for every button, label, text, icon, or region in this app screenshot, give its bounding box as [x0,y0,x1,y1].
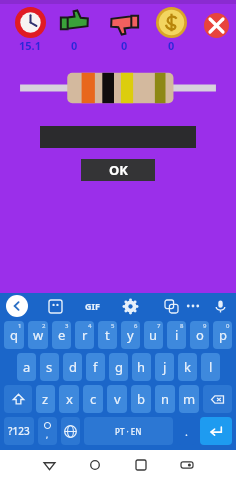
button[interactable]: g [109,353,128,381]
button[interactable]: Translate [160,295,182,317]
staticText: i [175,326,179,344]
button[interactable]: e [52,321,71,349]
staticText: u [149,326,158,344]
staticText: 0 [226,322,230,330]
button[interactable]: a [17,353,36,381]
staticText: n [161,390,170,408]
button[interactable]: o [190,321,209,349]
button[interactable]: . [177,417,196,445]
staticText: m [183,390,196,408]
staticText: e [58,326,66,344]
button[interactable]: s [40,353,59,381]
button[interactable]: More options [182,295,204,317]
staticText: OK [109,161,128,179]
staticText: s [46,358,53,376]
button[interactable]: t [98,321,117,349]
button[interactable]: Stickers [44,295,66,317]
staticText: d [69,358,77,376]
button[interactable]: Settings [119,295,141,317]
button[interactable]: p [213,321,232,349]
staticText: 0 [71,38,78,53]
staticText: w [33,326,44,344]
staticText: c [90,390,97,408]
staticText: PT · EN [115,426,142,437]
staticText: ?123 [8,424,30,438]
staticText: . [185,424,188,439]
button[interactable]: v [107,385,127,413]
staticText: b [137,390,145,408]
staticText: v [114,390,121,408]
button[interactable]: OK [81,159,155,181]
button[interactable]: w [28,321,48,349]
button[interactable]: b [131,385,151,413]
button[interactable]: h [132,353,151,381]
staticText: g [115,358,123,376]
button[interactable]: Emoji [38,417,57,445]
staticText: 3 [65,322,69,330]
staticText: t [105,326,110,344]
button[interactable]: Switch keyboard [176,454,198,476]
staticText: p [219,326,227,344]
button[interactable]: Back [38,454,60,476]
staticText: z [42,390,49,408]
staticText: q [10,326,18,344]
button[interactable]: Enter [200,417,232,445]
staticText: r [82,326,88,344]
button[interactable]: l [201,353,220,381]
staticText: y [127,326,134,344]
button[interactable]: Change language [61,417,80,445]
staticText: , [46,429,49,440]
staticText: l [209,358,213,376]
staticText: 9 [203,322,207,330]
staticText: 5 [111,322,115,330]
button[interactable]: Dislike [107,7,141,53]
button[interactable]: r [75,321,94,349]
staticText: j [163,358,167,376]
staticText: 0 [121,38,128,53]
button[interactable]: Close [204,13,229,38]
staticText: 1 [18,322,22,330]
button[interactable]: i [167,321,186,349]
button[interactable]: c [83,385,103,413]
staticText: 0 [168,38,175,53]
button[interactable]: Shift [4,385,32,413]
button[interactable]: d [63,353,82,381]
button[interactable]: Backspace [203,385,232,413]
button[interactable]: Home [84,454,106,476]
button[interactable]: GIF [85,295,100,317]
button[interactable]: Back [6,295,28,317]
button[interactable]: Voice input [210,295,230,317]
staticText: a [23,358,31,376]
button[interactable]: x [59,385,79,413]
button[interactable]: u [144,321,163,349]
button[interactable]: Recent apps [130,454,152,476]
button[interactable]: ?123 [4,417,34,445]
staticText: 6 [134,322,138,330]
staticText: o [196,326,204,344]
button[interactable]: j [155,353,174,381]
staticText: 8 [180,322,184,330]
button[interactable]: Like [57,7,91,53]
button[interactable]: m [179,385,199,413]
button[interactable]: f [86,353,105,381]
staticText: 15.1 [19,38,41,53]
button[interactable]: Coins [154,7,188,53]
button[interactable]: Timer [13,7,47,53]
button[interactable]: k [178,353,197,381]
staticText: k [184,358,191,376]
button[interactable]: z [36,385,55,413]
staticText: 4 [88,322,92,330]
staticText: x [66,390,73,408]
staticText: 7 [157,322,161,330]
button[interactable]: n [155,385,175,413]
button[interactable]: PT · EN [84,417,173,445]
staticText: f [93,358,98,376]
button[interactable]: y [121,321,140,349]
staticText: GIF [85,300,100,312]
staticText: h [137,358,146,376]
staticText: 2 [42,322,46,330]
button[interactable]: q [4,321,24,349]
